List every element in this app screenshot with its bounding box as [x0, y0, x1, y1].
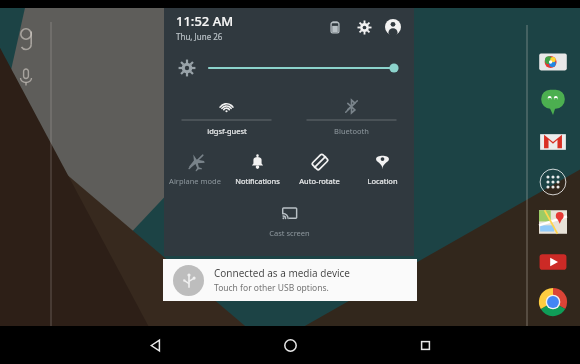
button[interactable]: All apps [537, 166, 569, 198]
button[interactable]: Auto-rotate [288, 144, 351, 192]
staticText: Cast screen [269, 228, 310, 238]
button[interactable]: Camera [537, 46, 569, 78]
button[interactable]: Notifications [226, 144, 288, 192]
button[interactable]: Battery [325, 17, 345, 37]
button[interactable]: idgsf-guest [164, 92, 289, 142]
staticText: Connected as a media device [214, 266, 350, 280]
button[interactable]: Back [136, 326, 174, 364]
button[interactable]: Recents [406, 326, 444, 364]
button[interactable]: User [382, 16, 404, 38]
button[interactable]: Brightness [174, 55, 200, 81]
staticText: Airplane mode [169, 176, 221, 186]
button[interactable]: Connected as a media device [163, 259, 417, 301]
staticText: idgsf-guest [207, 126, 247, 136]
button[interactable]: Bluetooth [289, 92, 414, 142]
staticText: Auto-rotate [299, 176, 340, 186]
staticText: Touch for other USB options. [214, 282, 329, 294]
staticText: Location [367, 176, 398, 186]
staticText: Notifications [235, 176, 280, 186]
button[interactable]: YouTube [537, 246, 569, 278]
button[interactable]: Maps [537, 206, 569, 238]
button[interactable]: Cast screen [248, 196, 331, 244]
button[interactable]: Chrome [537, 286, 569, 318]
button[interactable]: Home [271, 326, 309, 364]
button[interactable]: Location [351, 144, 414, 192]
staticText: Thu, June 26 [176, 31, 223, 42]
staticText: 11:52 AM [176, 12, 234, 30]
button[interactable]: Airplane mode [164, 144, 226, 192]
button[interactable]: Hangouts [537, 86, 569, 118]
button[interactable]: Gmail [537, 126, 569, 158]
button[interactable]: Settings [353, 16, 375, 38]
staticText: Bluetooth [334, 126, 369, 136]
button[interactable]: Brightness slider [209, 56, 400, 80]
